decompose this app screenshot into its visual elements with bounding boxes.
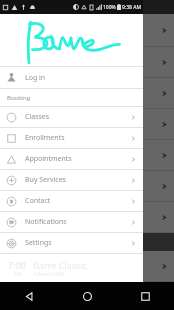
staticText: Log in (25, 73, 131, 83)
staticText: Enrollments (25, 133, 131, 143)
staticText: 9:38 AM (122, 4, 141, 11)
button[interactable] (143, 78, 174, 109)
button[interactable]: Contact (0, 191, 143, 211)
staticText: Ashton Smith (33, 271, 65, 278)
button[interactable]: Enrollments (0, 128, 143, 148)
button[interactable] (143, 202, 174, 233)
button[interactable] (143, 140, 174, 171)
button[interactable]: Classes (0, 107, 143, 127)
button[interactable]: Buy Services (0, 170, 143, 190)
staticText: Classes (25, 112, 131, 122)
button[interactable] (143, 47, 174, 78)
staticText: Barre Classic (33, 259, 87, 271)
staticText: Contact (25, 196, 131, 206)
button[interactable]: Back (0, 282, 58, 310)
button[interactable]: Appointments (0, 149, 143, 169)
staticText: 7:00 (8, 259, 26, 271)
staticText: 100% (103, 4, 116, 11)
staticText: Buy Services (25, 175, 131, 185)
staticText: Notifications (25, 217, 131, 227)
button[interactable] (143, 14, 174, 47)
staticText: AM (14, 271, 22, 278)
button[interactable]: Log in (0, 67, 143, 88)
button[interactable] (143, 109, 174, 140)
button[interactable] (143, 251, 174, 282)
staticText: Booking (7, 94, 31, 102)
button[interactable]: Notifications (0, 212, 143, 232)
staticText: Appointments (25, 154, 131, 164)
button[interactable]: Recent apps (116, 282, 174, 310)
button[interactable] (143, 282, 174, 310)
button[interactable] (143, 171, 174, 202)
staticText: Settings (25, 238, 131, 248)
button[interactable]: Home (58, 282, 116, 310)
button[interactable]: Settings (0, 233, 143, 253)
